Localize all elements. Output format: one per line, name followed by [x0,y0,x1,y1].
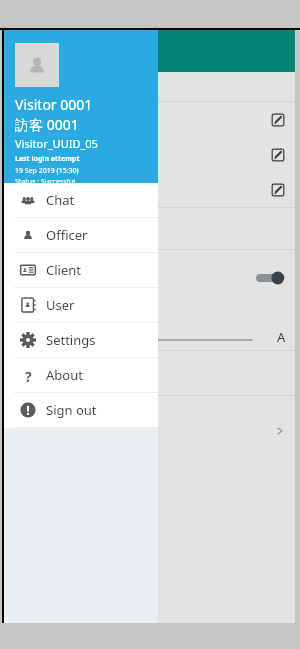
button[interactable]: Sign out [2,393,158,428]
button[interactable]: User [2,288,158,323]
button[interactable]: Toggle [256,271,284,285]
staticText: Officer [46,226,88,244]
staticText: Sign out [46,401,97,419]
button[interactable]: Chat [2,183,158,218]
button[interactable]: ? [2,358,158,393]
staticText: ? [25,367,32,383]
button[interactable]: Settings [2,323,158,358]
button[interactable]: Edit [271,113,285,127]
staticText: User [46,296,75,314]
staticText: 19 Sep 2019 (15:30) [15,166,79,176]
staticText: 訪客 0001 [15,115,79,134]
staticText: hoto [4,416,31,432]
staticText: About [46,366,83,384]
staticText: Chat [46,191,75,209]
button[interactable]: Client [2,253,158,288]
button[interactable]: Edit [271,183,285,197]
button[interactable]: Officer [2,218,158,253]
button[interactable]: hoto [2,396,295,436]
staticText: Status : Successful [15,177,76,183]
staticText: A [277,328,286,346]
button[interactable]: Edit [271,148,285,162]
staticText: Client [46,261,81,279]
staticText: Last login attempt [15,154,80,164]
staticText: Visitor_UUID_05 [15,136,98,151]
staticText: Visitor 0001 [15,95,93,114]
staticText: Settings [46,331,96,349]
button[interactable]: Profile photo [15,43,59,87]
